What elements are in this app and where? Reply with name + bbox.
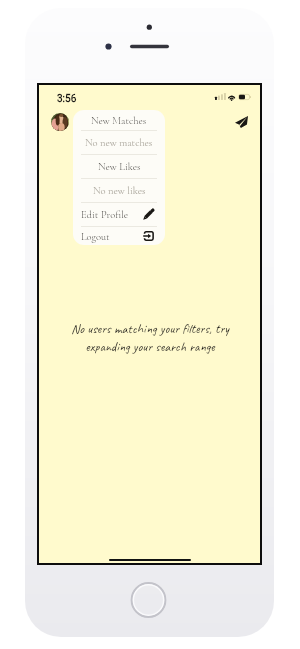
staticText: Edit Profile <box>81 208 129 221</box>
staticText: 3:56 <box>57 93 77 105</box>
staticText: No new likes <box>93 184 146 197</box>
staticText: No new matches <box>85 136 153 149</box>
button[interactable]: Logout <box>73 227 165 245</box>
button[interactable]: Profile <box>51 113 69 131</box>
button[interactable]: Edit Profile <box>73 203 165 226</box>
staticText: New Matches <box>91 114 147 127</box>
staticText: No users matching your filters, try expa… <box>65 320 235 355</box>
button[interactable]: No new matches <box>73 131 165 154</box>
button[interactable]: New Matches <box>73 110 165 130</box>
staticText: New Likes <box>98 160 141 173</box>
staticText: Logout <box>81 230 110 243</box>
button[interactable]: New Likes <box>73 155 165 178</box>
button[interactable]: No new likes <box>73 179 165 202</box>
button[interactable]: Send message <box>224 105 258 139</box>
